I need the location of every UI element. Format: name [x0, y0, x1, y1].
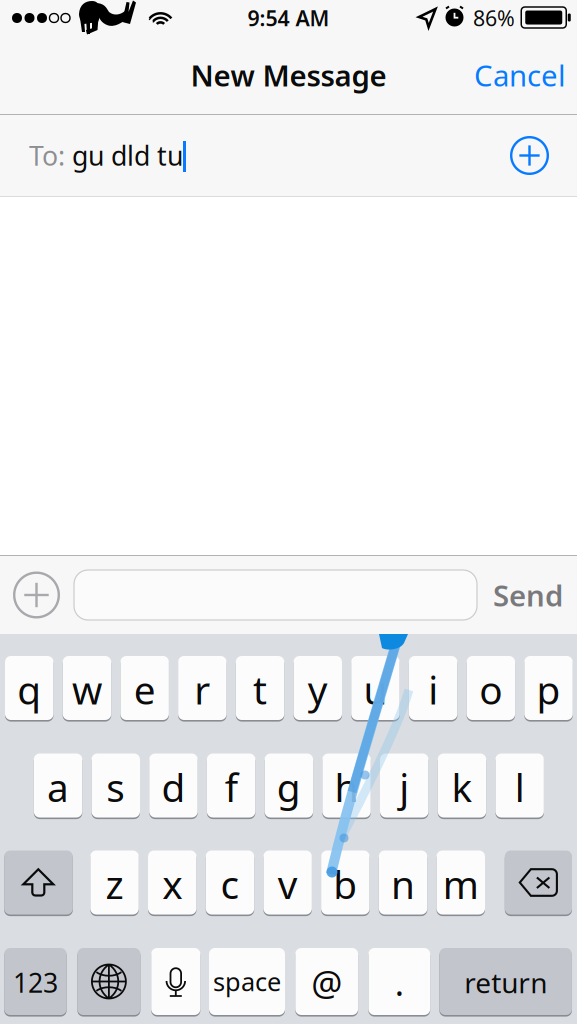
staticText: j — [399, 761, 409, 813]
button[interactable]: o — [467, 655, 515, 721]
button[interactable]: m — [436, 849, 485, 915]
staticText: return — [464, 964, 547, 1001]
staticText: space — [213, 965, 281, 998]
button[interactable]: Cancel — [458, 36, 577, 114]
button[interactable]: f — [207, 752, 255, 818]
button[interactable]: Attach media — [13, 571, 60, 618]
staticText: o — [479, 664, 502, 715]
button[interactable]: y — [293, 655, 342, 721]
button[interactable]: p — [524, 655, 573, 721]
button[interactable]: x — [148, 849, 196, 915]
staticText: 9:54 AM — [247, 4, 329, 32]
staticText: gu dld tu — [72, 138, 183, 173]
button[interactable]: Dictation — [151, 947, 200, 1016]
staticText: n — [391, 858, 415, 910]
staticText: c — [220, 858, 239, 910]
button[interactable]: t — [236, 655, 284, 721]
staticText: m — [443, 858, 479, 910]
staticText: s — [106, 761, 125, 813]
staticText: e — [134, 664, 156, 715]
button[interactable]: u — [351, 655, 400, 721]
staticText: 86% — [473, 4, 515, 32]
staticText: k — [451, 761, 472, 813]
button[interactable]: r — [178, 655, 227, 721]
staticText: t — [253, 664, 267, 715]
button[interactable]: l — [495, 752, 544, 818]
button[interactable]: Next keyboard — [77, 947, 140, 1016]
staticText: b — [333, 858, 357, 910]
staticText: i — [428, 664, 438, 715]
button[interactable]: Shift — [4, 849, 73, 915]
staticText: p — [536, 664, 560, 715]
staticText: f — [225, 761, 238, 813]
staticText: r — [194, 664, 210, 715]
button[interactable]: d — [149, 752, 198, 818]
staticText: h — [335, 761, 359, 813]
staticText: . — [395, 959, 404, 1005]
staticText: @ — [311, 959, 342, 1005]
button[interactable]: @ — [295, 947, 358, 1016]
staticText: z — [105, 858, 123, 910]
button[interactable]: Add contact — [502, 128, 557, 183]
button[interactable]: e — [120, 655, 169, 721]
staticText: Cancel — [474, 55, 566, 94]
button[interactable]: . — [368, 947, 430, 1016]
staticText: New Message — [190, 55, 386, 94]
button[interactable]: b — [321, 849, 370, 915]
button[interactable]: s — [91, 752, 140, 818]
button[interactable]: k — [438, 752, 486, 818]
staticText: u — [363, 664, 387, 715]
button[interactable]: Delete — [505, 849, 572, 915]
button[interactable]: z — [90, 849, 139, 915]
staticText: v — [278, 858, 298, 910]
staticText: Send — [493, 575, 563, 614]
button[interactable]: q — [5, 655, 53, 721]
staticText: y — [308, 664, 328, 715]
button[interactable]: i — [409, 655, 457, 721]
button[interactable]: j — [380, 752, 428, 818]
button[interactable]: n — [379, 849, 427, 915]
button[interactable]: a — [34, 752, 82, 818]
button[interactable]: c — [206, 849, 254, 915]
staticText: q — [17, 664, 41, 715]
button[interactable]: g — [265, 752, 313, 818]
staticText: x — [162, 858, 182, 910]
button[interactable]: v — [263, 849, 312, 915]
staticText: w — [72, 664, 102, 715]
button[interactable]: space — [209, 947, 285, 1016]
staticText: l — [515, 761, 525, 813]
button[interactable]: 123 — [4, 947, 67, 1016]
button[interactable]: Send — [493, 565, 563, 624]
staticText: To: — [29, 138, 72, 173]
button[interactable]: w — [63, 655, 111, 721]
button[interactable]: h — [322, 752, 371, 818]
staticText: g — [277, 761, 301, 813]
button[interactable]: return — [439, 947, 572, 1016]
staticText: d — [161, 761, 185, 813]
staticText: a — [47, 761, 69, 813]
staticText: 123 — [13, 965, 58, 1000]
